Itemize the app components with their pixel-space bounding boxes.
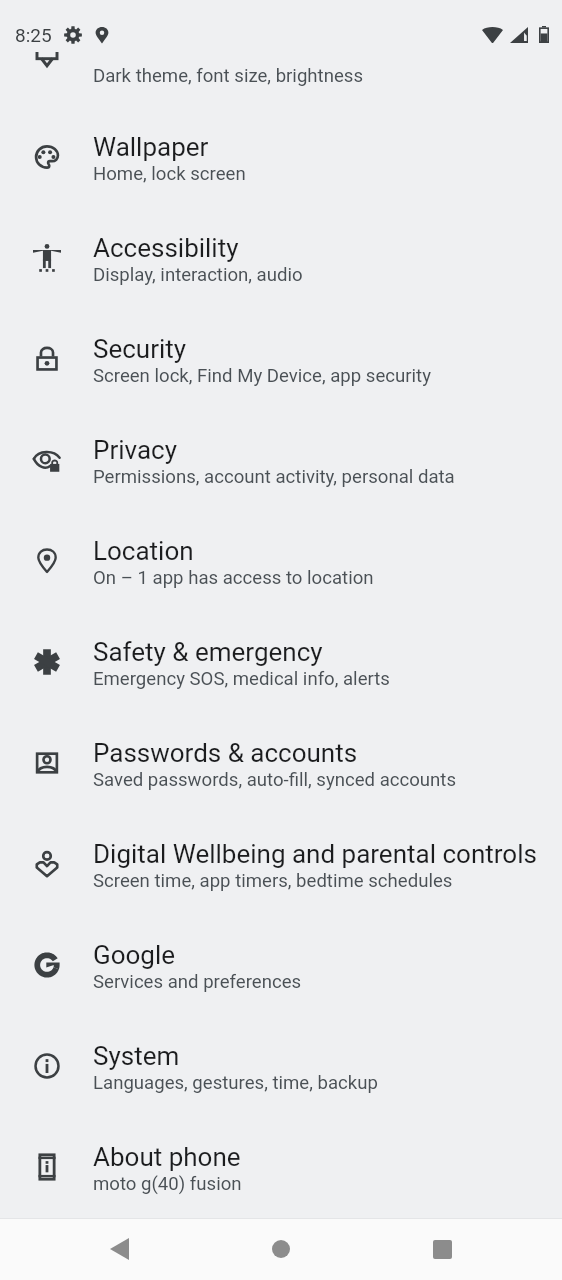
button[interactable]: Home <box>251 1218 311 1280</box>
staticText: Services and preferences <box>93 971 302 993</box>
button[interactable]: Privacy <box>0 405 562 506</box>
staticText: Home, lock screen <box>93 163 246 185</box>
staticText: Passwords & accounts <box>93 738 358 768</box>
staticText: Saved passwords, auto-fill, synced accou… <box>93 769 457 791</box>
button[interactable]: Location <box>0 506 562 607</box>
staticText: Location <box>93 536 194 566</box>
button[interactable]: Recent apps <box>412 1218 472 1280</box>
staticText: Emergency SOS, medical info, alerts <box>93 668 390 690</box>
staticText: Security <box>93 334 187 364</box>
button[interactable]: Wallpaper <box>0 102 562 203</box>
button[interactable]: Safety & emergency <box>0 607 562 708</box>
staticText: Display, interaction, audio <box>93 264 303 286</box>
button[interactable]: About phone <box>0 1112 562 1213</box>
staticText: Digital Wellbeing and parental controls <box>93 839 537 869</box>
staticText: Privacy <box>93 435 177 465</box>
button[interactable]: Dark theme, font size, brightness <box>0 52 562 101</box>
staticText: Permissions, account activity, personal … <box>93 466 455 488</box>
button[interactable]: Back <box>89 1218 149 1280</box>
button[interactable]: System <box>0 1011 562 1112</box>
staticText: On – 1 app has access to location <box>93 567 374 589</box>
staticText: Screen time, app timers, bedtime schedul… <box>93 870 453 892</box>
staticText: Screen lock, Find My Device, app securit… <box>93 365 431 387</box>
staticText: Safety & emergency <box>93 637 323 667</box>
staticText: 8:25 <box>15 24 52 46</box>
button[interactable]: Accessibility <box>0 203 562 304</box>
staticText: Accessibility <box>93 233 239 263</box>
staticText: moto g(40) fusion <box>93 1173 242 1195</box>
staticText: Wallpaper <box>93 132 209 162</box>
staticText: Languages, gestures, time, backup <box>93 1072 378 1094</box>
staticText: Dark theme, font size, brightness <box>93 65 363 87</box>
staticText: System <box>93 1041 180 1071</box>
button[interactable]: Digital Wellbeing and parental controls <box>0 809 562 910</box>
button[interactable]: Passwords & accounts <box>0 708 562 809</box>
staticText: About phone <box>93 1142 241 1172</box>
button[interactable]: Google <box>0 910 562 1011</box>
staticText: Google <box>93 940 176 970</box>
button[interactable]: Security <box>0 304 562 405</box>
